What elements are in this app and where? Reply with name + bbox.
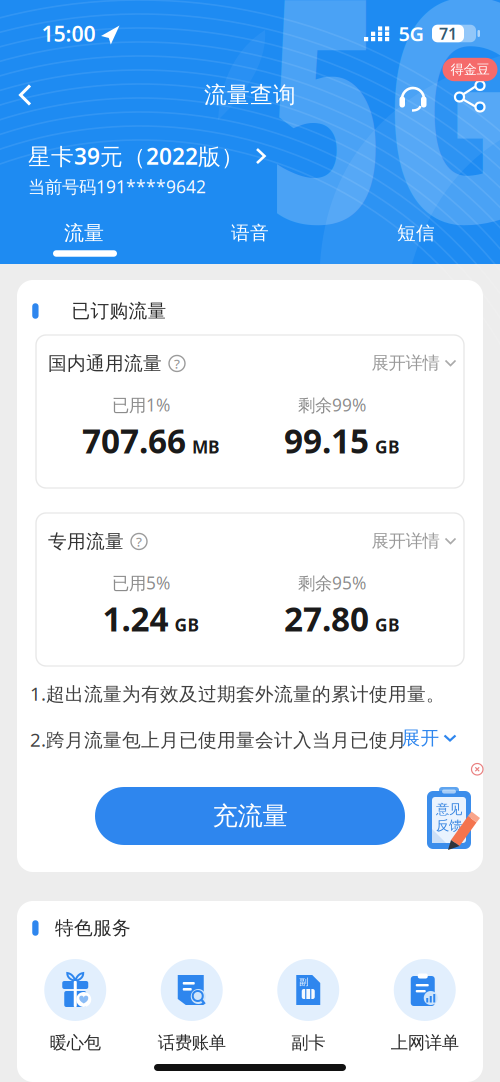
button[interactable]: 流量 <box>24 218 144 248</box>
staticText: 5G <box>267 0 500 235</box>
staticText: 707.66 <box>82 418 186 463</box>
staticText: 暖心包 <box>50 1032 101 1053</box>
staticText: GB <box>174 613 199 636</box>
staticText: 短信 <box>397 221 435 244</box>
staticText: 流量查询 <box>204 81 296 109</box>
button[interactable]: 关闭 <box>471 763 483 775</box>
staticText: 副 <box>299 976 308 988</box>
staticText: 国内通用流量 <box>48 352 162 375</box>
staticText: 15:00 <box>41 19 95 48</box>
staticText: 专用流量 <box>48 530 124 553</box>
button[interactable]: 暖心包 <box>17 959 133 1053</box>
staticText: 意见 <box>436 801 462 817</box>
staticText: 展开详情 <box>371 530 439 552</box>
staticText: 已用1% <box>112 393 170 416</box>
staticText: 副卡 <box>291 1032 325 1053</box>
staticText: 星卡39元（2022版） <box>28 141 244 171</box>
staticText: 展开 <box>401 726 439 749</box>
button[interactable]: Back <box>17 81 43 108</box>
staticText: 流量 <box>64 221 104 245</box>
staticText: 99.15 <box>284 418 369 463</box>
button[interactable]: 展开详情 <box>371 352 456 374</box>
button[interactable]: 意见反馈 <box>427 787 481 851</box>
staticText: 上网详单 <box>391 1032 459 1053</box>
staticText: 已订购流量 <box>71 299 166 322</box>
staticText: 特色服务 <box>55 916 131 939</box>
staticText: ? <box>136 533 142 550</box>
button[interactable]: 副 <box>250 959 366 1053</box>
button[interactable]: 星卡39元（2022版） <box>28 141 267 171</box>
staticText: 已用5% <box>112 571 170 594</box>
staticText: 1.24 <box>102 596 168 641</box>
staticText: GB <box>375 435 400 458</box>
button[interactable]: 分享 <box>454 80 485 111</box>
staticText: 2.跨月流量包上月已使用量会计入当月已使月 <box>30 727 407 752</box>
staticText: 27.80 <box>284 596 369 641</box>
staticText: 反馈 <box>436 817 462 834</box>
staticText: 充流量 <box>212 800 287 831</box>
button[interactable]: 展开 <box>401 726 456 749</box>
staticText: 5G <box>398 20 424 47</box>
button[interactable]: 话费账单 <box>133 959 250 1053</box>
staticText: 1.超出流量为有效及过期套外流量的累计使用量。 <box>30 681 445 706</box>
button[interactable]: 语音 <box>190 218 310 248</box>
staticText: GB <box>375 613 400 636</box>
button[interactable]: 展开详情 <box>371 530 456 552</box>
staticText: 得金豆 <box>450 61 489 78</box>
staticText: 话费账单 <box>158 1032 226 1053</box>
button[interactable]: 短信 <box>356 218 476 248</box>
button[interactable]: 充流量 <box>95 787 405 845</box>
staticText: 剩余95% <box>298 571 366 594</box>
staticText: 展开详情 <box>371 352 439 374</box>
button[interactable]: 客服 <box>397 79 431 113</box>
staticText: MB <box>192 435 220 458</box>
staticText: 当前号码191****9642 <box>28 175 206 198</box>
staticText: 剩余99% <box>298 393 366 416</box>
staticText: 71 <box>439 23 457 44</box>
staticText: ? <box>174 355 180 372</box>
staticText: 语音 <box>231 221 269 244</box>
button[interactable]: 上网详单 <box>366 959 483 1053</box>
